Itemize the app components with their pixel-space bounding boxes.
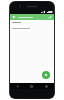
button[interactable]: Save	[47, 14, 53, 20]
button[interactable]: Home	[24, 83, 39, 89]
button[interactable]	[18, 14, 47, 20]
button[interactable]	[12, 22, 52, 25]
button[interactable]: Back	[11, 14, 17, 20]
button[interactable]	[12, 28, 52, 31]
button[interactable]: Back	[10, 83, 24, 89]
button[interactable]: Add	[42, 71, 50, 79]
button[interactable]: Recent apps	[39, 83, 54, 89]
